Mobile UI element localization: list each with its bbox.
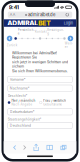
button[interactable]: Tabs	[60, 145, 66, 150]
button[interactable]: ADMIRAL	[7, 19, 51, 27]
button[interactable]: Geburtsdatum*	[8, 109, 72, 115]
button[interactable]: Share	[33, 144, 39, 151]
staticText: Nach Angabe	[12, 103, 33, 106]
staticText: Deutschland	[10, 123, 31, 128]
button[interactable]: Forward	[24, 145, 26, 149]
button[interactable]: Back	[14, 145, 16, 149]
staticText: Bestätigung	[47, 28, 64, 35]
staticText: Geburtsname	[43, 103, 62, 106]
staticText: Herr / männlich	[12, 99, 36, 103]
staticText: Weiter	[65, 42, 73, 49]
button[interactable]: Vorname*	[8, 76, 72, 83]
staticText: Staatsangehörigkeit*	[8, 117, 42, 121]
button[interactable]: Login	[64, 21, 73, 25]
staticText: Login	[64, 21, 73, 25]
button[interactable]: Back	[7, 36, 12, 41]
button[interactable]: Bookmarks	[47, 145, 53, 150]
button[interactable]: Frau / weiblich	[39, 99, 66, 106]
button[interactable]: Reload	[64, 12, 70, 17]
staticText: sich jetzt in wenigen Schritten und sich…	[12, 60, 68, 68]
staticText: Nachname*	[10, 86, 30, 90]
staticText: ADMIRAL	[7, 19, 38, 27]
button[interactable]: Nachname*	[8, 85, 72, 91]
button[interactable]: Herr / männlich	[8, 99, 36, 106]
staticText: Willkommen bei AdmiralBet! Registrieren …	[12, 51, 57, 59]
staticText: Frau / weiblich	[43, 99, 66, 103]
staticText: admiralbet.de	[28, 12, 55, 17]
button[interactable]: Deutschland	[8, 122, 72, 129]
staticText: Geburtsdatum*	[10, 110, 35, 114]
staticText: 9:41	[9, 4, 19, 10]
staticText: Geschlecht*	[8, 94, 28, 98]
staticText: Persönliche	[18, 28, 35, 35]
staticText: Vorname*	[10, 77, 26, 82]
staticText: Zurück	[7, 44, 18, 47]
staticText: BET	[38, 19, 51, 27]
staticText: Sie sich Ihren Willkommensbonus.	[12, 69, 68, 73]
button[interactable]: Text size	[10, 12, 16, 17]
staticText: AA	[10, 12, 16, 17]
staticText: Kontakt	[35, 30, 47, 33]
button[interactable]: Next	[68, 36, 73, 41]
